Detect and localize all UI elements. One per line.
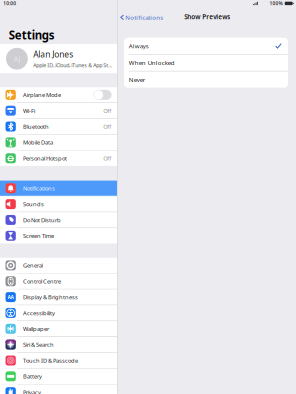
staticText: Siri & Search [23, 341, 54, 348]
staticText: When Unlocked [129, 58, 175, 67]
button[interactable]: Do Not Disturb [0, 212, 117, 228]
staticText: Airplane Mode [23, 91, 61, 99]
button[interactable]: Screen Time [0, 228, 117, 243]
button[interactable]: Personal Hotspot [0, 151, 117, 166]
button[interactable]: Wi-Fi [0, 103, 117, 118]
staticText: Notifications [125, 13, 163, 22]
staticText: 100% [269, 0, 282, 7]
staticText: Bluetooth [23, 123, 49, 130]
button[interactable]: AA [0, 289, 117, 305]
button[interactable]: Accessibility [0, 305, 117, 321]
button[interactable]: Touch ID & Passcode [0, 353, 117, 368]
staticText: Never [129, 75, 146, 84]
button[interactable]: When Unlocked [124, 55, 288, 71]
staticText: Accessibility [23, 309, 55, 317]
staticText: AJ [13, 54, 20, 64]
button[interactable]: Bluetooth [0, 119, 117, 134]
staticText: Notifications [23, 184, 55, 192]
staticText: Off [103, 154, 111, 162]
staticText: Do Not Disturb [23, 216, 61, 224]
button[interactable]: General [0, 258, 117, 273]
button[interactable]: Notifications [0, 181, 117, 196]
staticText: 10:00 [3, 0, 16, 7]
staticText: Alan Jones [33, 49, 73, 60]
button[interactable]: Notifications [120, 11, 163, 24]
staticText: General [23, 261, 43, 269]
staticText: Privacy [23, 388, 41, 394]
button[interactable]: AJ [0, 44, 117, 73]
staticText: Show Previews [184, 12, 230, 21]
staticText: Control Centre [23, 277, 61, 285]
button[interactable]: Battery [0, 369, 117, 384]
button[interactable]: Control Centre [0, 274, 117, 289]
staticText: Battery [23, 372, 42, 380]
staticText: Always [129, 42, 149, 50]
staticText: Display & Brightness [23, 293, 78, 301]
button[interactable]: Always [124, 38, 288, 54]
staticText: Apple ID, iCloud, iTunes & App St… [33, 62, 112, 69]
button[interactable]: Wallpaper [0, 321, 117, 336]
staticText: Wi-Fi [23, 107, 35, 115]
staticText: AA [8, 294, 14, 300]
button[interactable]: Never [124, 71, 288, 88]
button[interactable]: Sounds [0, 196, 117, 212]
staticText: Touch ID & Passcode [23, 357, 78, 364]
staticText: Personal Hotspot [23, 154, 67, 162]
staticText: Mobile Data [23, 138, 53, 146]
staticText: Settings [9, 27, 55, 43]
button[interactable]: Privacy [0, 384, 117, 394]
button[interactable]: Airplane Mode [0, 87, 117, 102]
staticText: Off [103, 107, 111, 115]
staticText: Wallpaper [23, 325, 49, 333]
staticText: Off [103, 123, 111, 130]
staticText: Screen Time [23, 232, 54, 240]
button[interactable]: Siri & Search [0, 337, 117, 352]
staticText: Sounds [23, 200, 44, 208]
button[interactable]: Mobile Data [0, 135, 117, 150]
